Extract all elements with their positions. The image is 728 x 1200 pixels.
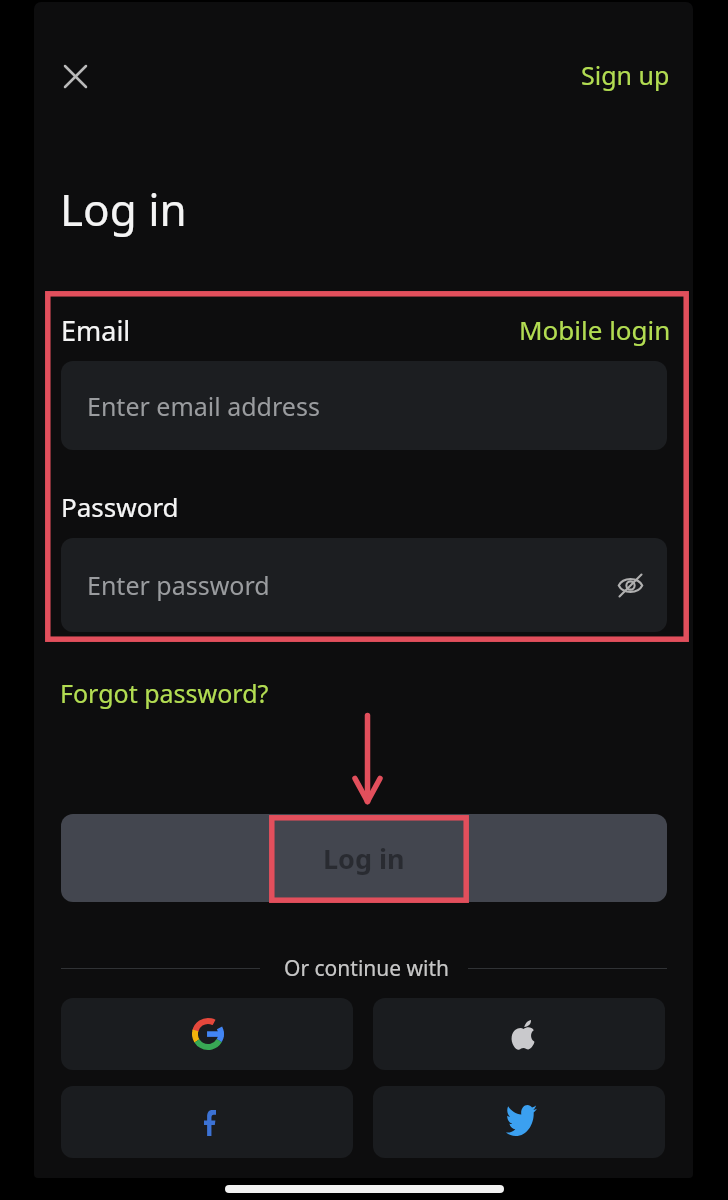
- button[interactable]: Forgot password?: [50, 667, 279, 719]
- staticText: Enter email address: [87, 389, 320, 423]
- button[interactable]: Show password: [611, 566, 649, 604]
- staticText: Sign up: [581, 58, 670, 92]
- button[interactable]: Enter password: [61, 538, 667, 632]
- staticText: Enter password: [87, 568, 270, 602]
- staticText: Log in: [60, 179, 187, 239]
- button[interactable]: Sign in with Facebook: [61, 1086, 353, 1158]
- staticText: Mobile login: [519, 312, 671, 347]
- button[interactable]: Sign in with Twitter: [373, 1086, 665, 1158]
- button[interactable]: Enter email address: [61, 361, 667, 450]
- staticText: Forgot password?: [60, 676, 269, 710]
- button[interactable]: Sign in with Google: [61, 998, 353, 1070]
- button[interactable]: Sign in with Apple: [373, 998, 665, 1070]
- button[interactable]: Close: [51, 52, 99, 100]
- staticText: Email: [61, 312, 131, 349]
- staticText: Password: [61, 489, 179, 524]
- button[interactable]: Log in: [61, 814, 667, 902]
- staticText: Or continue with: [284, 954, 450, 983]
- button[interactable]: Mobile login: [507, 304, 683, 355]
- button[interactable]: Sign up: [567, 48, 684, 102]
- staticText: Log in: [323, 840, 405, 877]
